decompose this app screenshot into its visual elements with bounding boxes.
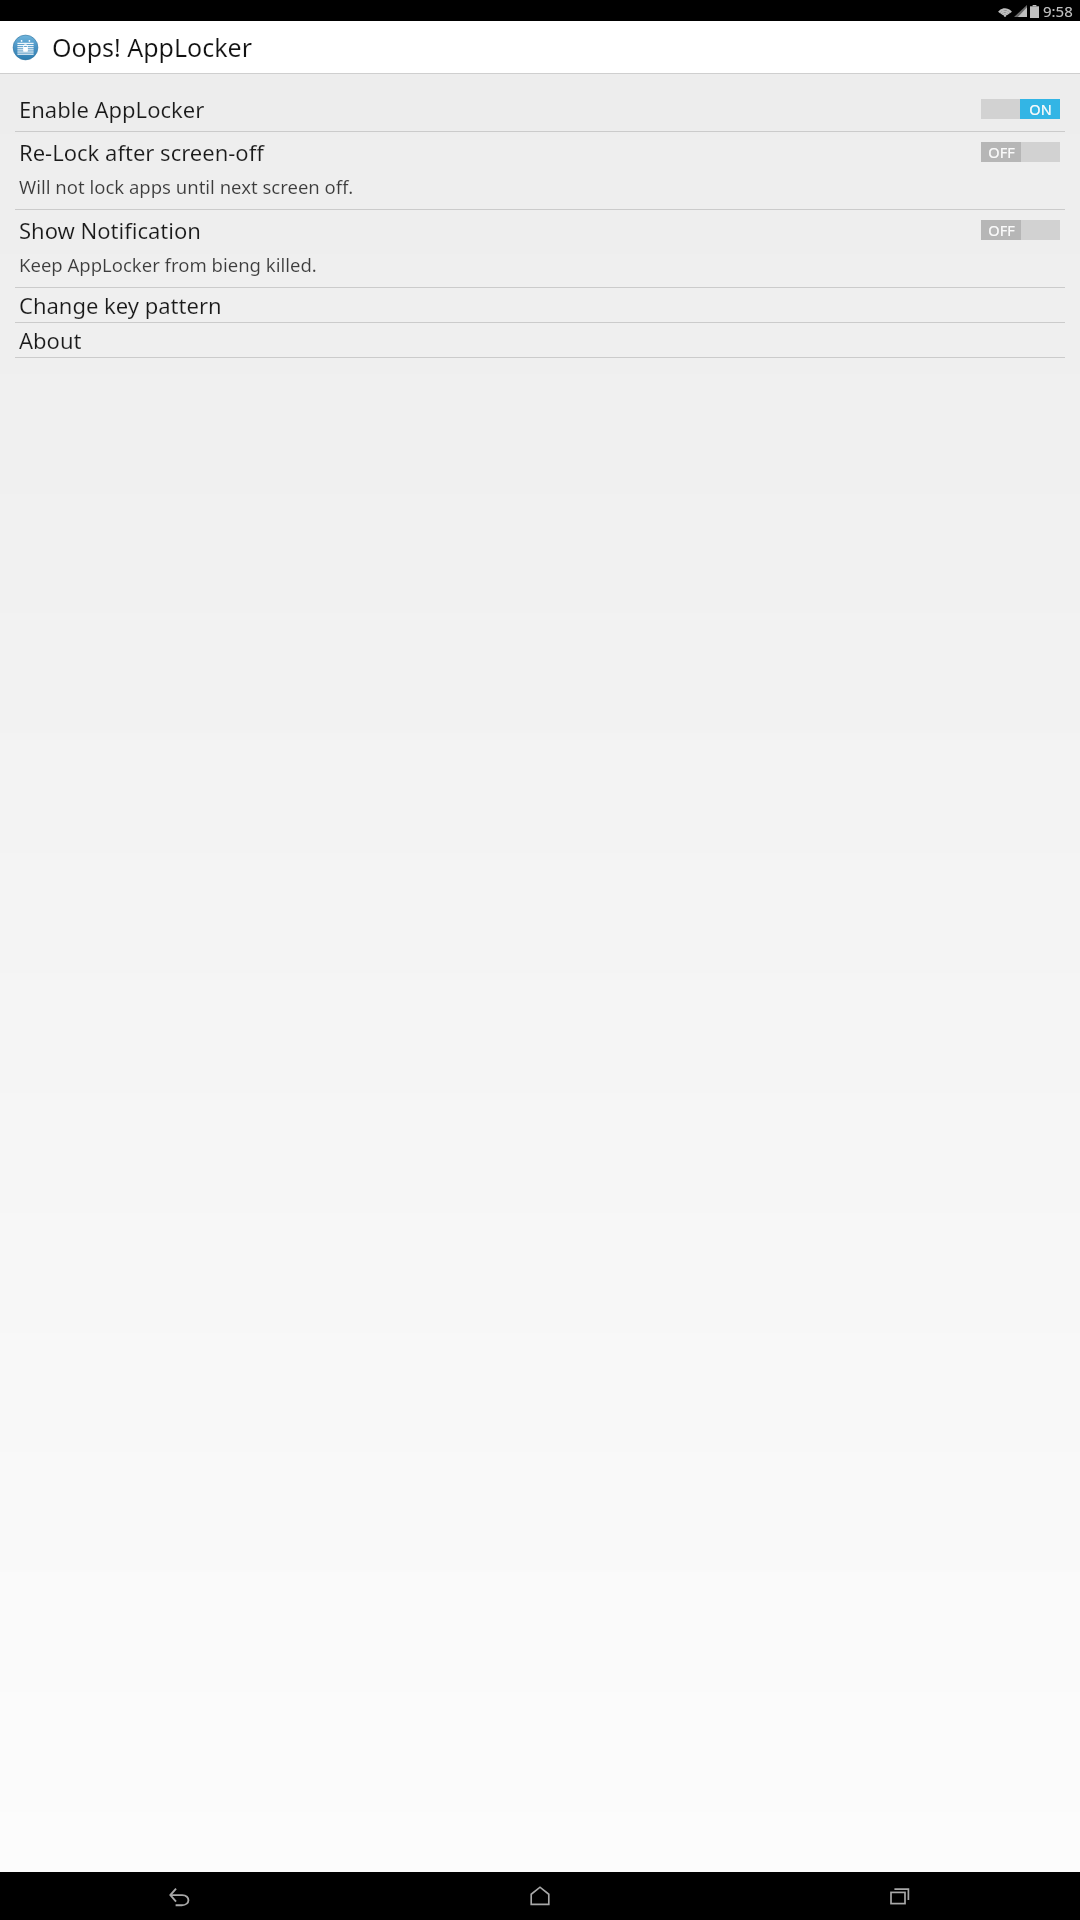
button[interactable]: Switch on xyxy=(981,99,1060,119)
staticText: Re-Lock after screen-off xyxy=(19,137,981,167)
button[interactable]: Recent apps xyxy=(720,1872,1080,1920)
staticText: Will not lock apps until next screen off… xyxy=(19,174,354,199)
staticText: OFF xyxy=(988,142,1015,162)
staticText: ON xyxy=(1029,99,1052,119)
staticText: Change key pattern xyxy=(19,290,222,320)
button[interactable]: Back xyxy=(0,1872,360,1920)
button[interactable]: Enable AppLocker xyxy=(0,87,1080,131)
button[interactable]: Home xyxy=(360,1872,720,1920)
staticText: Enable AppLocker xyxy=(19,94,981,124)
button[interactable]: Re-Lock after screen-off xyxy=(0,132,1080,209)
button[interactable]: Switch off xyxy=(981,220,1060,240)
button[interactable]: About xyxy=(0,323,1080,357)
staticText: Oops! AppLocker xyxy=(52,30,252,64)
button[interactable]: Change key pattern xyxy=(0,288,1080,322)
staticText: OFF xyxy=(988,220,1015,240)
staticText: 9:58 xyxy=(1043,1,1073,21)
staticText: About xyxy=(19,325,82,355)
button[interactable]: Switch off xyxy=(981,142,1060,162)
staticText: Keep AppLocker from bieng killed. xyxy=(19,252,317,277)
button[interactable]: Show Notification xyxy=(0,210,1080,287)
staticText: Show Notification xyxy=(19,215,981,245)
